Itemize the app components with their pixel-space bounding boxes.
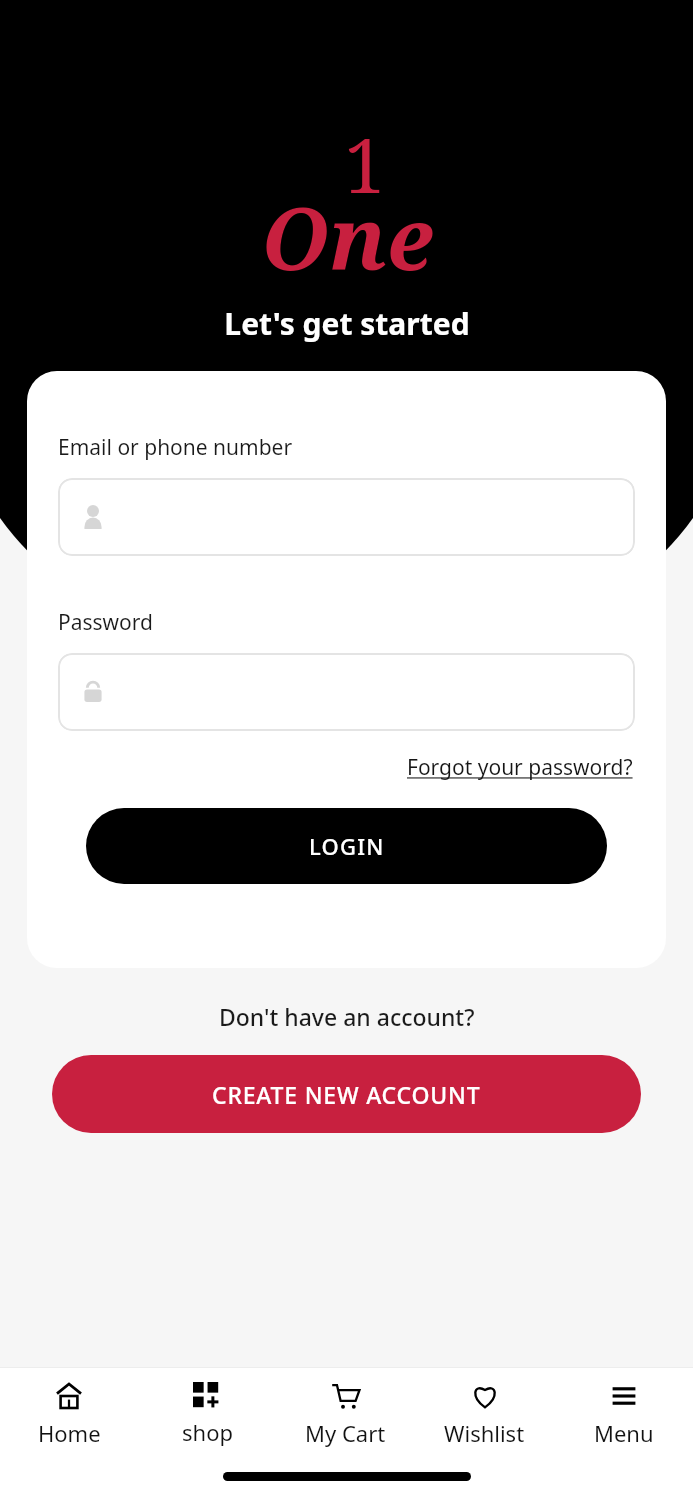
staticText: Email or phone number bbox=[58, 433, 293, 462]
staticText: Menu bbox=[594, 1418, 654, 1448]
staticText: Forgot your password? bbox=[407, 753, 633, 782]
staticText: Don't have an account? bbox=[219, 1001, 475, 1032]
button[interactable]: Email or phone number bbox=[58, 478, 635, 556]
button[interactable]: CREATE NEW ACCOUNT bbox=[52, 1055, 641, 1133]
button[interactable]: My Cart bbox=[276, 1375, 415, 1454]
staticText: CREATE NEW ACCOUNT bbox=[212, 1079, 481, 1110]
button[interactable]: Home bbox=[0, 1375, 138, 1454]
button[interactable]: Password bbox=[58, 653, 635, 731]
staticText: Wishlist bbox=[444, 1418, 525, 1448]
staticText: Home bbox=[38, 1418, 101, 1448]
button[interactable]: Forgot your password? bbox=[405, 749, 635, 786]
button[interactable]: Menu bbox=[554, 1375, 693, 1454]
staticText: 1 bbox=[344, 114, 386, 215]
button[interactable]: shop bbox=[138, 1376, 276, 1453]
button[interactable]: Wishlist bbox=[415, 1375, 554, 1454]
button[interactable]: LOGIN bbox=[86, 808, 607, 884]
staticText: Password bbox=[58, 608, 153, 637]
staticText: My Cart bbox=[305, 1418, 386, 1448]
staticText: shop bbox=[182, 1417, 233, 1447]
staticText: Let's get started bbox=[224, 303, 470, 344]
staticText: LOGIN bbox=[309, 831, 385, 861]
staticText: One bbox=[261, 178, 433, 295]
